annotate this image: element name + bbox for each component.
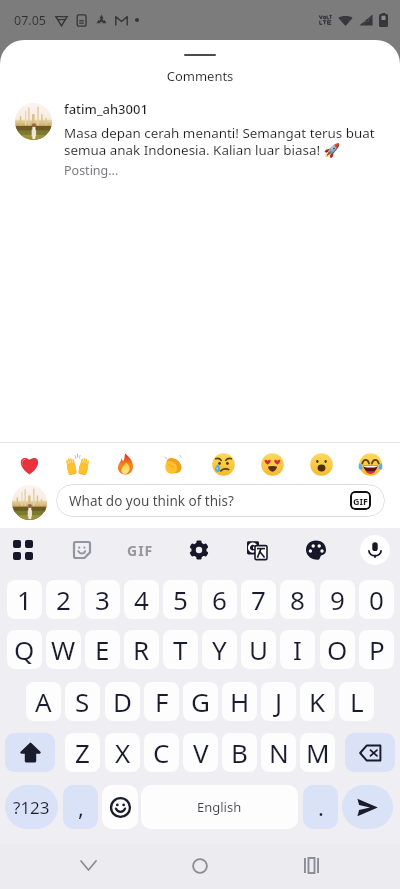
button[interactable]: K xyxy=(300,682,335,721)
button[interactable]: ?123 xyxy=(5,785,58,829)
button[interactable]: S xyxy=(65,682,100,721)
staticText: Comments xyxy=(0,67,400,85)
button[interactable]: 1 xyxy=(7,580,42,619)
button[interactable]: React cry xyxy=(199,446,248,482)
button[interactable]: palette xyxy=(294,528,338,572)
button[interactable]: Q xyxy=(7,630,42,669)
staticText: 2 xyxy=(56,582,71,617)
button[interactable]: N xyxy=(261,733,296,772)
staticText: I xyxy=(293,632,302,667)
staticText: W xyxy=(51,632,76,667)
staticText: 7 xyxy=(251,582,266,617)
button[interactable]: React joy xyxy=(346,446,395,482)
button[interactable] xyxy=(15,103,52,140)
button[interactable]: 5 xyxy=(163,580,198,619)
staticText: English xyxy=(197,798,242,816)
button[interactable]: P xyxy=(359,630,394,669)
button[interactable]: grid xyxy=(1,528,45,572)
staticText: Z xyxy=(75,735,90,770)
button[interactable]: React wow xyxy=(297,446,346,482)
button[interactable]: 3 xyxy=(85,580,120,619)
button[interactable]: , xyxy=(63,785,98,829)
staticText: N xyxy=(269,735,289,770)
button[interactable]: 4 xyxy=(124,580,159,619)
staticText: Q xyxy=(14,632,35,667)
staticText: S xyxy=(75,684,90,719)
button[interactable]: F xyxy=(144,682,179,721)
button[interactable]: E xyxy=(85,630,120,669)
staticText: 6 xyxy=(212,582,227,617)
button[interactable]: sticker xyxy=(60,528,104,572)
staticText: X xyxy=(115,735,131,770)
button[interactable]: J xyxy=(261,682,296,721)
button[interactable]: English xyxy=(141,785,298,829)
staticText: Y xyxy=(212,632,227,667)
staticText: GIF xyxy=(127,541,154,560)
staticText: 4 xyxy=(134,582,149,617)
button[interactable]: . xyxy=(303,785,338,829)
staticText: 1 xyxy=(17,582,32,617)
staticText: P xyxy=(369,632,385,667)
staticText: Masa depan cerah menanti! Semangat terus… xyxy=(64,124,386,159)
staticText: C xyxy=(153,735,170,770)
button[interactable]: Shift xyxy=(5,733,55,772)
staticText: V xyxy=(193,735,209,770)
button[interactable]: Back xyxy=(57,843,119,888)
button[interactable]: 0 xyxy=(359,580,394,619)
button[interactable]: Y xyxy=(202,630,237,669)
button[interactable]: B xyxy=(222,733,257,772)
button[interactable]: gear xyxy=(177,528,221,572)
button[interactable]: C xyxy=(144,733,179,772)
button[interactable]: Z xyxy=(65,733,100,772)
button[interactable]: I xyxy=(280,630,315,669)
button[interactable]: Backspace xyxy=(345,733,395,772)
button[interactable]: React fire xyxy=(101,446,150,482)
button[interactable]: M xyxy=(300,733,335,772)
staticText: ?123 xyxy=(13,796,50,819)
staticText: A xyxy=(35,684,52,719)
button[interactable]: H xyxy=(222,682,257,721)
button[interactable]: W xyxy=(46,630,81,669)
button[interactable]: fatim_ah3001 xyxy=(64,100,148,118)
button[interactable]: V xyxy=(183,733,218,772)
button[interactable]: X xyxy=(105,733,140,772)
button[interactable]: React hands xyxy=(53,446,101,482)
button[interactable]: 7 xyxy=(241,580,276,619)
button[interactable]: Emoji xyxy=(102,785,138,829)
button[interactable]: React clap xyxy=(150,446,199,482)
button[interactable]: A xyxy=(26,682,61,721)
staticText: What do you think of this? xyxy=(69,492,234,510)
button[interactable]: D xyxy=(105,682,140,721)
staticText: , xyxy=(78,792,84,822)
staticText: Posting... xyxy=(64,162,119,179)
staticText: GIF xyxy=(353,495,368,507)
staticText: D xyxy=(113,684,132,719)
button[interactable]: U xyxy=(241,630,276,669)
button[interactable]: R xyxy=(124,630,159,669)
button[interactable]: React heart xyxy=(5,446,53,482)
button[interactable]: O xyxy=(320,630,355,669)
staticText: 3 xyxy=(95,582,110,617)
button[interactable]: What do you think of this? xyxy=(56,484,385,517)
button[interactable]: Home xyxy=(169,843,231,888)
button[interactable]: Voice input xyxy=(360,535,390,565)
button[interactable]: 9 xyxy=(320,580,355,619)
staticText: G xyxy=(191,684,210,719)
staticText: 5 xyxy=(173,582,188,617)
button[interactable]: Recents xyxy=(280,843,342,888)
button[interactable]: T xyxy=(163,630,198,669)
button[interactable] xyxy=(12,485,47,520)
button[interactable]: L xyxy=(339,682,374,721)
staticText: O xyxy=(327,632,348,667)
button[interactable]: React love xyxy=(248,446,297,482)
staticText: . xyxy=(318,792,324,822)
button[interactable]: 2 xyxy=(46,580,81,619)
button[interactable]: G xyxy=(183,682,218,721)
button[interactable]: gif xyxy=(118,528,162,572)
staticText: J xyxy=(275,684,283,719)
button[interactable]: 6 xyxy=(202,580,237,619)
button[interactable]: Send xyxy=(342,785,393,829)
button[interactable]: 8 xyxy=(280,580,315,619)
staticText: F xyxy=(155,684,169,719)
button[interactable]: translate xyxy=(235,528,279,572)
